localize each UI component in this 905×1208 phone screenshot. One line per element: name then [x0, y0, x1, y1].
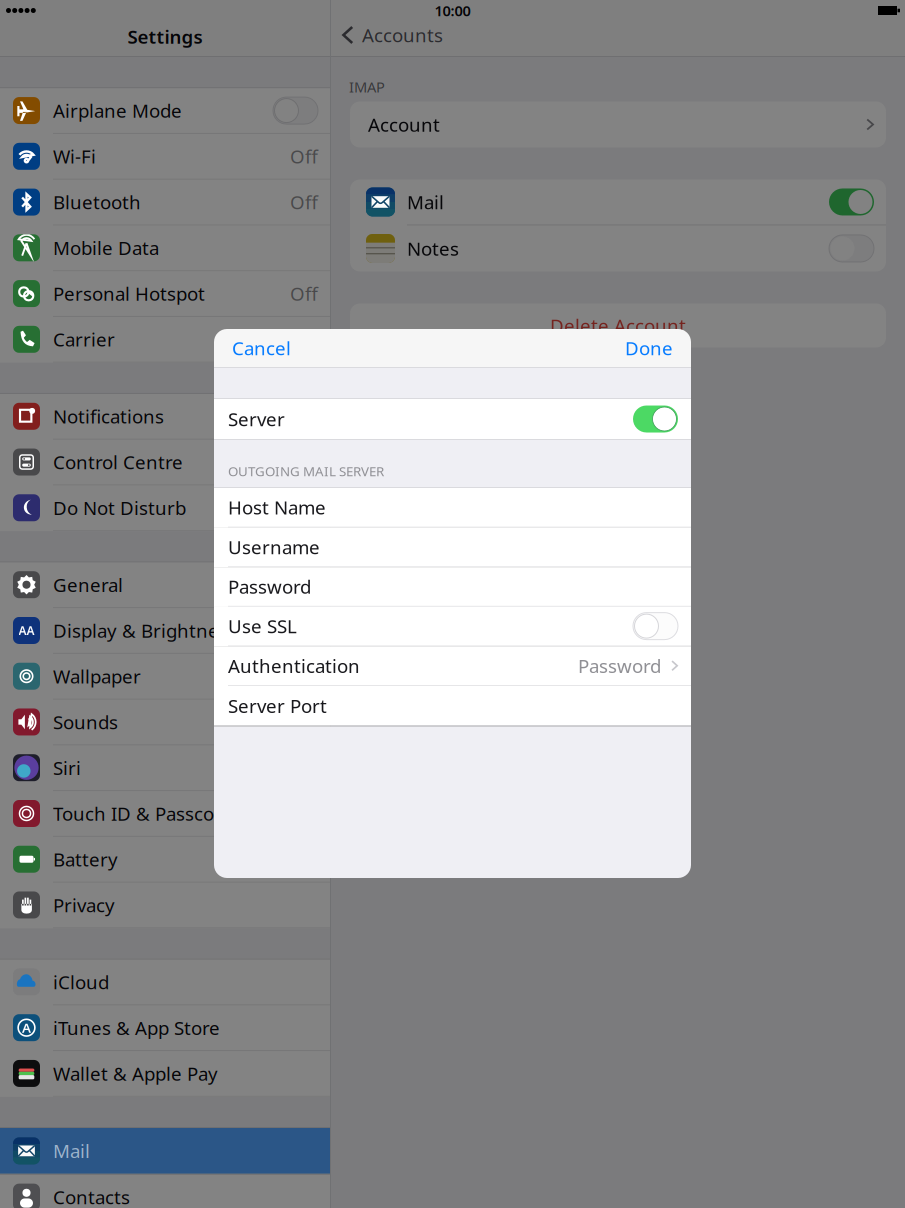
staticText: General	[53, 572, 123, 597]
staticText: Mobile Data	[53, 235, 159, 260]
button[interactable]: Sounds	[0, 700, 330, 745]
staticText: Notifications	[53, 404, 164, 429]
staticText: Host Name	[228, 495, 326, 520]
button[interactable]: Notifications	[0, 394, 330, 440]
staticText: OUTGOING MAIL SERVER	[228, 462, 384, 480]
button[interactable]: Contacts	[0, 1175, 330, 1208]
button[interactable]: Battery	[0, 837, 330, 883]
staticText: Touch ID & Passcode	[53, 801, 236, 826]
staticText: Mail	[53, 1138, 90, 1163]
staticText: Account	[368, 112, 440, 137]
staticText: IMAP	[349, 77, 385, 96]
staticText: Personal Hotspot	[53, 281, 205, 306]
staticText: Privacy	[53, 893, 115, 917]
button[interactable]: Cancel	[232, 328, 291, 368]
staticText: iCloud	[53, 969, 109, 994]
staticText: A	[22, 1019, 31, 1036]
staticText: AA	[18, 622, 34, 638]
staticText: Sounds	[53, 710, 118, 734]
button[interactable]: Do Not Disturb	[0, 485, 330, 531]
button[interactable]: iCloud	[0, 960, 330, 1005]
button[interactable]: AA	[0, 608, 330, 654]
button[interactable]: Username	[214, 528, 691, 567]
staticText: Done	[625, 336, 673, 360]
staticText: Off	[290, 144, 318, 169]
staticText: Password	[228, 574, 311, 599]
staticText: Battery	[53, 847, 118, 872]
staticText: Password	[578, 653, 661, 678]
button[interactable]: Privacy	[0, 883, 330, 928]
staticText: Siri	[53, 755, 81, 780]
button[interactable]: Use SSL	[214, 607, 691, 646]
staticText: Wallet & Apple Pay	[53, 1061, 218, 1086]
staticText: Off	[290, 281, 318, 306]
staticText: Server Port	[228, 693, 327, 718]
staticText: Accounts	[362, 23, 443, 47]
button[interactable]: Account	[350, 101, 886, 147]
button[interactable]: Mail	[350, 179, 886, 224]
button[interactable]: Server Port	[214, 686, 691, 726]
button[interactable]: Bluetooth	[0, 180, 330, 225]
button[interactable]: A	[0, 1005, 330, 1051]
button[interactable]: Authentication	[214, 646, 691, 686]
button[interactable]: Siri	[0, 745, 330, 791]
staticText: Username	[228, 534, 320, 559]
staticText: Airplane Mode	[53, 98, 182, 123]
button[interactable]: Personal Hotspot	[0, 271, 330, 317]
staticText: Cancel	[232, 336, 291, 360]
staticText: Mail	[407, 190, 444, 214]
button[interactable]: Delete Account	[350, 303, 886, 347]
button[interactable]: Touch ID & Passcode	[0, 791, 330, 837]
button[interactable]: Mobile Data	[0, 225, 330, 271]
button[interactable]: Carrier	[0, 317, 330, 363]
button[interactable]: Password	[214, 567, 691, 607]
button[interactable]: Wallpaper	[0, 654, 330, 700]
button[interactable]: Mail	[0, 1128, 330, 1174]
staticText: Settings	[127, 24, 202, 49]
staticText: Bluetooth	[53, 190, 141, 214]
button[interactable]: Wi-Fi	[0, 134, 330, 180]
button[interactable]: Control Centre	[0, 440, 330, 485]
staticText: Wallpaper	[53, 664, 141, 689]
staticText: Carrier	[53, 327, 115, 352]
staticText: Notes	[407, 236, 459, 261]
staticText: Wi-Fi	[53, 144, 96, 169]
button[interactable]: Wallet & Apple Pay	[0, 1051, 330, 1097]
button[interactable]: General	[0, 562, 330, 608]
staticText: Off	[290, 190, 318, 214]
staticText: 10:00	[434, 1, 470, 20]
staticText: iTunes & App Store	[53, 1015, 220, 1040]
staticText: Authentication	[228, 653, 360, 678]
staticText: Delete Account	[550, 313, 686, 338]
button[interactable]: Back to Accounts	[331, 19, 905, 51]
button[interactable]: Airplane Mode	[0, 88, 330, 134]
staticText: Server	[228, 407, 285, 431]
staticText: Use SSL	[228, 614, 297, 638]
button[interactable]: Host Name	[214, 488, 691, 528]
staticText: Do Not Disturb	[53, 495, 186, 520]
staticText: Display & Brightness	[53, 618, 237, 643]
staticText: Control Centre	[53, 450, 183, 474]
staticText: Contacts	[53, 1185, 130, 1208]
button[interactable]: Done	[625, 328, 673, 368]
button[interactable]: Notes	[350, 225, 886, 271]
